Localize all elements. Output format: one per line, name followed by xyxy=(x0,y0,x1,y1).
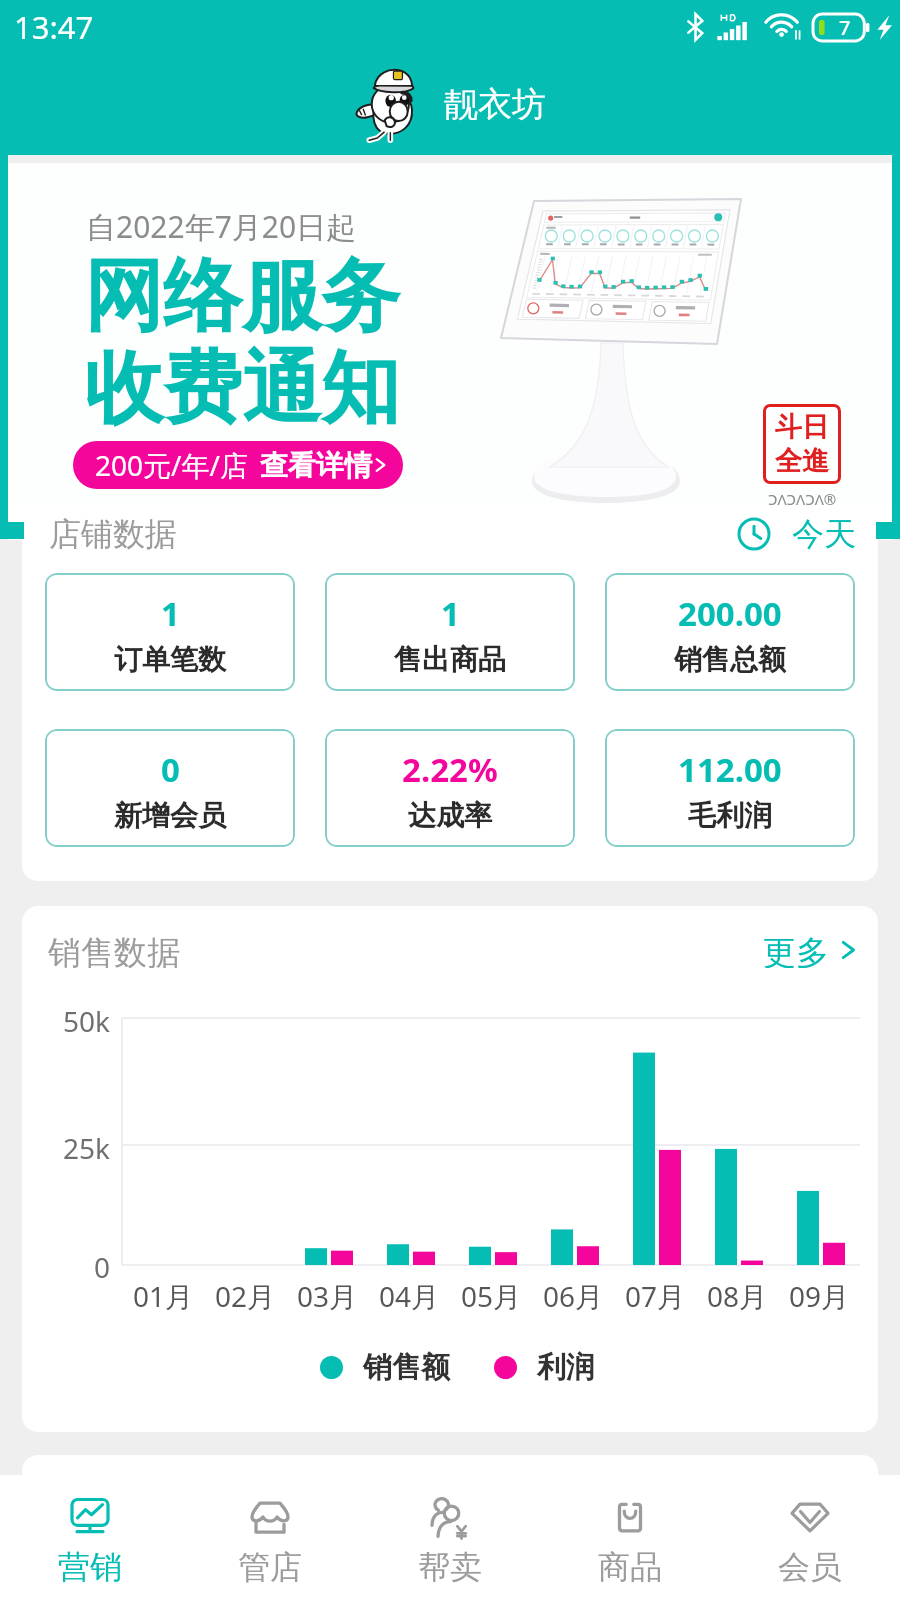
staticText: 今天 xyxy=(792,514,856,554)
button[interactable]: 200元/年/店 xyxy=(73,441,403,489)
staticText: 查看详情 xyxy=(260,448,372,483)
button[interactable]: 2.22% xyxy=(325,729,575,847)
staticText: 0 xyxy=(44,1248,110,1286)
staticText: 新增会员 xyxy=(114,798,226,833)
staticText: 售出商品 xyxy=(394,642,506,677)
staticText: 订单笔数 xyxy=(114,642,226,677)
staticText: 销售总额 xyxy=(674,642,786,677)
button[interactable]: 会员 Members xyxy=(720,1475,900,1600)
staticText: 商品 xyxy=(598,1547,662,1587)
button[interactable]: 管店 Manage store xyxy=(180,1475,360,1600)
button[interactable]: 更多 xyxy=(763,932,856,968)
button[interactable]: 200.00 xyxy=(605,573,855,691)
staticText: 网络服务 xyxy=(84,247,400,347)
staticText: 会员 xyxy=(778,1547,842,1587)
staticText: 13:47 xyxy=(14,6,94,48)
staticText: 帮卖 xyxy=(418,1547,482,1587)
staticText: 收费通知 xyxy=(84,339,400,439)
staticText: 斗日 xyxy=(775,410,829,444)
staticText: 营销 xyxy=(58,1547,122,1587)
staticText: 04月 xyxy=(379,1277,440,1315)
button[interactable]: 帮卖 Assisted selling xyxy=(360,1475,540,1600)
button[interactable]: 商品 Products xyxy=(540,1475,720,1600)
staticText: 08月 xyxy=(707,1277,768,1315)
staticText: 200元/年/店 xyxy=(95,446,248,484)
staticText: 09月 xyxy=(789,1277,850,1315)
button[interactable]: 营销 Marketing xyxy=(0,1475,180,1600)
staticText: 05月 xyxy=(461,1277,522,1315)
staticText: 销售额 xyxy=(363,1349,450,1386)
staticText: 200.00 xyxy=(678,591,782,636)
staticText: 利润 xyxy=(537,1349,595,1386)
staticText: ƆΛƆΛƆΛ® xyxy=(768,489,837,509)
staticText: 自2022年7月20日起 xyxy=(86,206,357,247)
button[interactable]: 1 xyxy=(325,573,575,691)
staticText: 1 xyxy=(441,591,460,636)
staticText: 02月 xyxy=(215,1277,276,1315)
staticText: 销售数据 xyxy=(48,932,180,968)
staticText: 1 xyxy=(161,591,180,636)
staticText: 毛利润 xyxy=(688,798,772,833)
button[interactable]: 0 xyxy=(45,729,295,847)
staticText: 2.22% xyxy=(402,747,498,792)
staticText: 112.00 xyxy=(678,747,782,792)
staticText: 全進 xyxy=(775,444,829,478)
staticText: 01月 xyxy=(133,1277,194,1315)
button[interactable]: 1 xyxy=(45,573,295,691)
button[interactable]: 112.00 xyxy=(605,729,855,847)
staticText: 50k xyxy=(44,1002,110,1040)
staticText: 07月 xyxy=(625,1277,686,1315)
staticText: 0 xyxy=(161,747,180,792)
staticText: 店铺数据 xyxy=(49,514,177,554)
staticText: 25k xyxy=(44,1129,110,1167)
staticText: 管店 xyxy=(238,1547,302,1587)
staticText: 达成率 xyxy=(408,798,492,833)
staticText: 7 xyxy=(839,14,851,41)
staticText: 更多 xyxy=(763,932,829,968)
staticText: 03月 xyxy=(297,1277,358,1315)
staticText: 06月 xyxy=(543,1277,604,1315)
button[interactable]: 今天 xyxy=(736,514,856,554)
staticText: 靓衣坊 xyxy=(444,83,546,126)
